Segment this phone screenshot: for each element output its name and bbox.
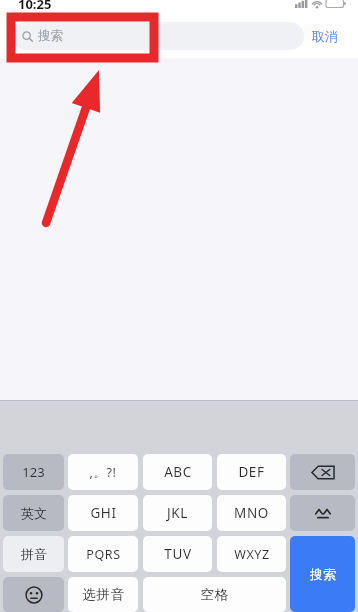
- button[interactable]: GHI: [68, 495, 138, 531]
- button[interactable]: 取消: [304, 22, 346, 50]
- button[interactable]: ABC: [143, 454, 212, 490]
- staticText: TUV: [164, 545, 192, 563]
- button[interactable]: PQRS: [68, 536, 138, 572]
- staticText: DEF: [238, 463, 265, 481]
- button[interactable]: WXYZ: [217, 536, 286, 572]
- staticText: WXYZ: [234, 546, 270, 563]
- staticText: ABC: [164, 463, 192, 481]
- button[interactable]: 选拼音: [68, 577, 138, 612]
- button[interactable]: 搜索: [12, 22, 304, 50]
- staticText: 123: [22, 463, 45, 481]
- staticText: 英文: [21, 505, 47, 521]
- button[interactable]: Shift: [290, 495, 355, 531]
- button[interactable]: Emoji: [3, 577, 64, 612]
- button[interactable]: JKL: [143, 495, 212, 531]
- button[interactable]: 123: [3, 454, 64, 490]
- button[interactable]: TUV: [143, 536, 212, 572]
- button[interactable]: Backspace: [290, 454, 355, 490]
- staticText: GHI: [90, 504, 117, 522]
- staticText: MNO: [234, 504, 269, 522]
- staticText: 取消: [312, 28, 338, 44]
- button[interactable]: ,。?!: [68, 454, 138, 490]
- staticText: 搜索: [310, 566, 336, 582]
- staticText: JKL: [167, 504, 188, 522]
- button[interactable]: 空格: [143, 577, 286, 612]
- staticText: 选拼音: [82, 586, 125, 603]
- staticText: 搜索: [38, 28, 63, 44]
- button[interactable]: DEF: [217, 454, 286, 490]
- staticText: 拼音: [21, 546, 47, 562]
- staticText: 10:25: [18, 0, 52, 9]
- button[interactable]: 拼音: [3, 536, 64, 572]
- staticText: 空格: [200, 586, 229, 603]
- staticText: PQRS: [86, 546, 121, 563]
- button[interactable]: 搜索: [290, 536, 355, 612]
- staticText: ,。?!: [89, 464, 117, 481]
- button[interactable]: MNO: [217, 495, 286, 531]
- button[interactable]: 英文: [3, 495, 64, 531]
